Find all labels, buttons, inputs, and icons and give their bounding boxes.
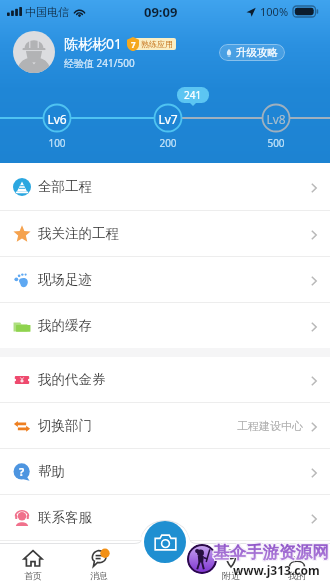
staticText: 联系客服 <box>38 509 92 526</box>
staticText: 帮助 <box>38 463 65 480</box>
button[interactable]: 我关注的工程 <box>0 211 330 256</box>
button[interactable]: ? <box>0 449 330 494</box>
button[interactable]: Camera <box>144 521 186 563</box>
button[interactable]: 现场足迹 <box>0 257 330 302</box>
staticText: 241 <box>184 88 202 102</box>
button[interactable]: 消息 <box>66 543 132 586</box>
staticText: 中国电信 <box>25 5 69 19</box>
staticText: 全部工程 <box>38 178 92 195</box>
staticText: 基伞手游资源网 <box>212 542 328 563</box>
staticText: 基伞手游资源网 <box>212 543 328 564</box>
staticText: Lv8 <box>266 111 286 127</box>
staticText: 200 <box>159 136 177 150</box>
staticText: 100% <box>260 4 289 19</box>
button[interactable]: 升级攻略 <box>219 44 285 61</box>
staticText: ? <box>19 464 25 479</box>
staticText: 基伞手游资源网 <box>213 541 329 562</box>
button[interactable]: 附近 <box>198 543 264 586</box>
staticText: Lv7 <box>158 111 178 127</box>
staticText: 7 <box>131 39 136 50</box>
staticText: 100 <box>48 136 66 150</box>
staticText: 500 <box>267 136 285 150</box>
staticText: 基伞手游资源网 <box>214 543 330 564</box>
staticText: 基伞手游资源网 <box>213 542 329 563</box>
button[interactable]: Profile avatar <box>13 31 55 73</box>
staticText: 基伞手游资源网 <box>213 543 329 564</box>
button[interactable]: 我的缓存 <box>0 303 330 348</box>
button[interactable]: 联系客服 <box>0 495 330 540</box>
button[interactable]: 首页 <box>0 543 66 586</box>
button[interactable]: 我的代金券 <box>0 357 330 402</box>
staticText: 工程建设中心 <box>237 419 303 433</box>
staticText: 基伞手游资源网 <box>214 541 330 562</box>
staticText: 陈彬彬01 <box>64 34 123 53</box>
staticText: 升级攻略 <box>236 46 278 59</box>
staticText: 基伞手游资源网 <box>214 542 330 563</box>
staticText: 基伞手游资源网 <box>212 541 328 562</box>
staticText: 我的 <box>288 570 306 581</box>
staticText: 首页 <box>24 570 42 581</box>
staticText: 切换部门 <box>38 417 92 434</box>
staticText: 熟练应用 <box>141 39 173 49</box>
button[interactable]: 切换部门 <box>0 403 330 448</box>
staticText: 我的代金券 <box>38 371 106 388</box>
button[interactable]: 我的 <box>264 543 330 586</box>
staticText: Lv6 <box>47 111 67 127</box>
button[interactable]: 全部工程 <box>0 163 330 210</box>
staticText: 消息 <box>90 570 108 581</box>
staticText: 现场足迹 <box>38 271 92 288</box>
staticText: 我关注的工程 <box>38 225 119 242</box>
staticText: www.j313.com <box>233 562 320 578</box>
staticText: 经验值 241/500 <box>64 56 135 70</box>
staticText: 09:09 <box>144 3 178 21</box>
staticText: 我的缓存 <box>38 317 92 334</box>
staticText: 附近 <box>222 570 240 581</box>
